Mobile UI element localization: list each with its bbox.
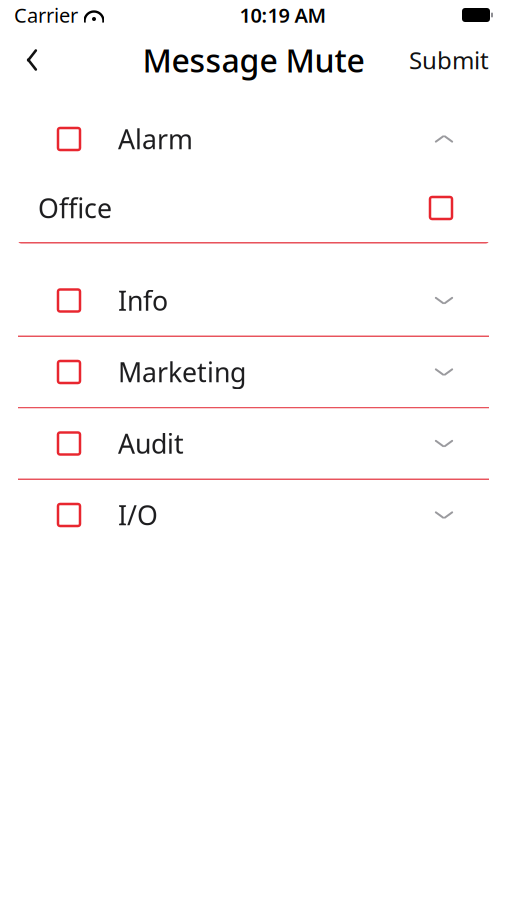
button[interactable]: Info [18,265,489,335]
button[interactable]: Back [8,38,56,82]
staticText: Audit [118,426,184,461]
button[interactable]: I/O [18,480,489,550]
button[interactable]: Audit [18,408,489,478]
staticText: Marketing [118,354,246,390]
button[interactable]: Submit [399,38,499,82]
button[interactable]: Marketing [18,337,489,407]
staticText: Carrier [14,2,78,28]
button[interactable]: Office [18,174,489,242]
staticText: I/O [118,497,158,533]
staticText: Submit [409,44,489,76]
staticText: 10:19 AM [239,2,326,28]
staticText: Info [118,283,168,318]
staticText: Message Mute [142,39,364,81]
staticText: Alarm [118,121,193,157]
button[interactable]: Alarm [18,104,489,174]
staticText: Office [38,190,112,226]
